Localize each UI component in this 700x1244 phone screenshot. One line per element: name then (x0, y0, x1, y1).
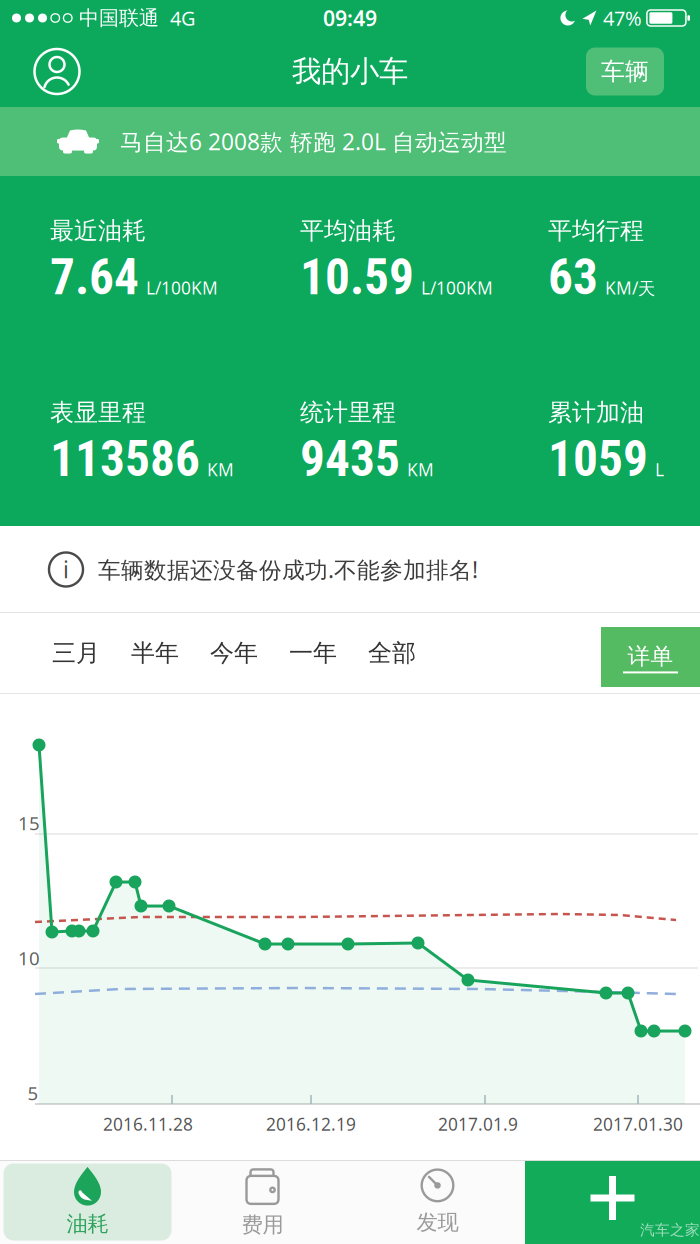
staticText: 47% (603, 5, 642, 31)
staticText: 车辆 (601, 57, 649, 86)
button[interactable]: 费用 (175, 1160, 350, 1244)
staticText: 09:49 (323, 4, 377, 32)
staticText: 113586 (50, 430, 200, 488)
button[interactable]: 三月 (52, 638, 100, 668)
staticText: i (63, 554, 69, 584)
staticText: 15 (18, 811, 40, 835)
button[interactable]: 油耗 (0, 1160, 175, 1244)
staticText: KM (407, 458, 434, 481)
button[interactable]: 车辆 (586, 47, 664, 95)
staticText: 10 (18, 946, 40, 970)
staticText: 中国联通 (79, 6, 159, 30)
button[interactable]: 全部 (368, 638, 416, 668)
staticText: 7.64 (50, 248, 139, 306)
staticText: 2017.01.9 (438, 1112, 518, 1135)
staticText: L (655, 458, 664, 481)
staticText: 10.59 (300, 248, 414, 306)
staticText: 马自达6 2008款 轿跑 2.0L 自动运动型 (120, 126, 507, 156)
staticText: KM/天 (605, 276, 655, 299)
staticText: 2017.01.30 (593, 1112, 683, 1135)
staticText: 一年 (289, 638, 337, 668)
staticText: 4G (170, 5, 196, 31)
staticText: KM (207, 458, 234, 481)
staticText: 发现 (416, 1209, 458, 1236)
staticText: 全部 (368, 638, 416, 668)
staticText: 9435 (300, 430, 400, 488)
staticText: 63 (548, 248, 598, 306)
staticText: 2016.12.19 (266, 1112, 356, 1135)
staticText: L/100KM (146, 276, 218, 299)
staticText: 费用 (241, 1212, 283, 1238)
staticText: 我的小车 (292, 53, 408, 89)
staticText: 累计加油 (548, 398, 644, 427)
staticText: 2016.11.28 (103, 1112, 193, 1135)
button[interactable]: 一年 (289, 638, 337, 668)
staticText: L/100KM (421, 276, 493, 299)
button[interactable]: 详单 (601, 627, 700, 687)
button[interactable]: 添加 (525, 1160, 700, 1244)
staticText: 表显里程 (50, 398, 146, 427)
staticText: 平均行程 (548, 216, 644, 245)
staticText: 平均油耗 (300, 216, 396, 245)
staticText: 半年 (131, 638, 179, 668)
button[interactable]: 发现 (350, 1160, 525, 1244)
button[interactable]: 今年 (210, 638, 258, 668)
staticText: 1059 (548, 430, 648, 488)
staticText: 详单 (627, 643, 673, 670)
staticText: 最近油耗 (50, 216, 146, 245)
button[interactable]: 半年 (131, 638, 179, 668)
staticText: 5 (27, 1081, 38, 1105)
staticText: 统计里程 (300, 398, 396, 427)
button[interactable]: 我的 (33, 47, 81, 95)
staticText: 车辆数据还没备份成功.不能参加排名! (98, 554, 478, 584)
staticText: 汽车之家 (640, 1221, 700, 1239)
staticText: 今年 (210, 638, 258, 668)
staticText: 三月 (52, 638, 100, 668)
staticText: 油耗 (66, 1211, 108, 1237)
